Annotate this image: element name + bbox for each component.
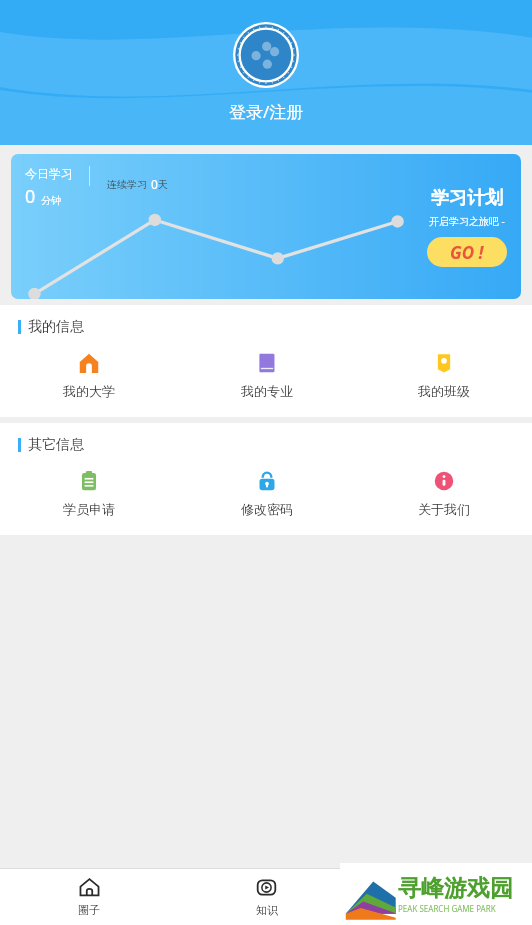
staticText: 修改密码	[241, 501, 293, 517]
button[interactable]: 修改密码	[178, 468, 355, 519]
button[interactable]: 学员申请	[0, 468, 178, 519]
staticText: 其它信息	[28, 436, 84, 454]
button[interactable]: 圈子	[0, 869, 178, 925]
staticText: 寻峰游戏园	[398, 874, 513, 903]
button[interactable]: GO !	[427, 237, 507, 267]
staticText: 开启学习之旅吧 -	[429, 214, 505, 228]
staticText: 圈子	[78, 903, 100, 917]
staticText: 0	[151, 176, 158, 192]
staticText: 知识	[256, 903, 278, 917]
staticText: 学习计划	[431, 187, 503, 210]
staticText: PEAK SEARCH GAME PARK	[398, 903, 496, 914]
staticText: 天	[158, 178, 168, 191]
staticText: 连续学习	[107, 178, 147, 191]
button[interactable]: 我的大学	[0, 350, 178, 401]
staticText: 学员申请	[63, 501, 115, 517]
staticText: 我的大学	[63, 383, 115, 399]
staticText: 今日学习	[25, 166, 73, 181]
staticText: 分钟	[41, 194, 61, 207]
staticText: 关于我们	[418, 501, 470, 517]
button[interactable]: 我的专业	[178, 350, 355, 401]
button[interactable]: 我的班级	[355, 350, 532, 401]
button[interactable]: 知识	[178, 869, 355, 925]
button[interactable]: 登录/注册	[221, 98, 312, 125]
staticText: 我的信息	[28, 318, 84, 336]
staticText: 0	[25, 184, 36, 209]
staticText: 我的班级	[418, 383, 470, 399]
button[interactable]: 今日学习	[11, 154, 521, 299]
staticText: 登录/注册	[229, 100, 304, 123]
staticText: 我的专业	[241, 383, 293, 399]
staticText: GO !	[450, 241, 484, 264]
button[interactable]: 关于我们	[355, 468, 532, 519]
